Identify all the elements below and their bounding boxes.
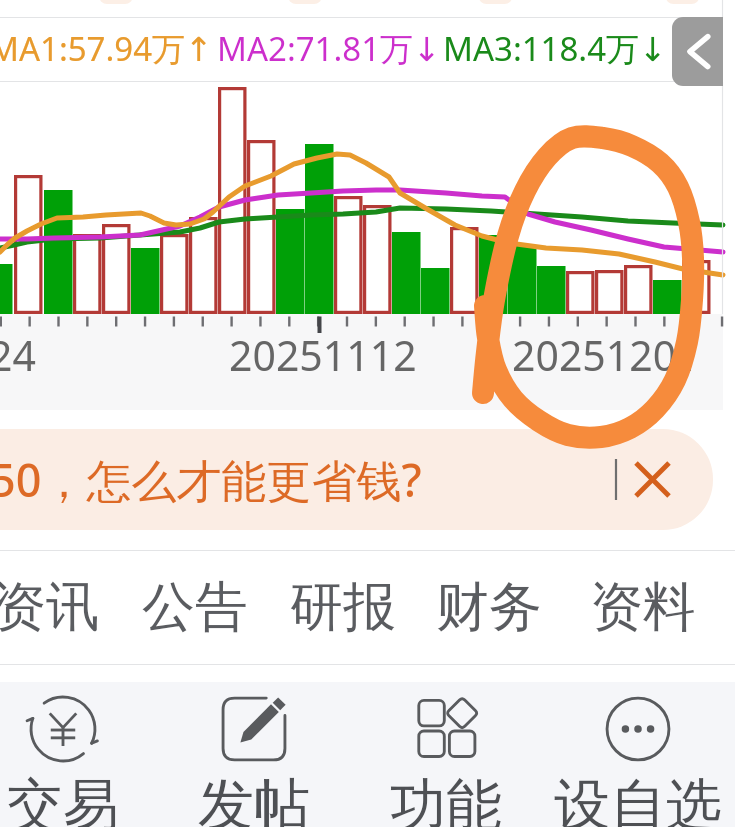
button[interactable]: 交易 xyxy=(0,682,158,827)
staticText: 资讯 xyxy=(0,574,99,641)
button[interactable]: Close xyxy=(634,461,671,498)
button[interactable]: 功能 xyxy=(350,682,541,827)
staticText: 资料 xyxy=(590,574,696,641)
staticText: 50，怎么才能更省钱? xyxy=(0,449,422,510)
staticText: 交易 xyxy=(7,770,119,827)
button[interactable]: 公告 xyxy=(121,551,269,664)
staticText: 20251112 xyxy=(229,327,417,383)
staticText: 20251201 xyxy=(512,327,700,383)
button[interactable]: 发帖 xyxy=(158,682,349,827)
staticText: 24 xyxy=(0,327,36,383)
button[interactable]: 研报 xyxy=(269,551,417,664)
staticText: 功能 xyxy=(390,770,502,827)
staticText: 公告 xyxy=(142,574,248,641)
staticText: 发帖 xyxy=(198,770,310,827)
staticText: 研报 xyxy=(290,574,396,641)
staticText: MA2:71.81万↓ xyxy=(217,26,441,71)
button[interactable]: 财务 xyxy=(415,551,563,664)
button[interactable]: 资料 xyxy=(569,551,717,664)
staticText: 设自选 xyxy=(554,770,722,827)
button[interactable]: 50，怎么才能更省钱? xyxy=(0,429,713,530)
staticText: 财务 xyxy=(436,574,542,641)
staticText: MA3:118.4万↓ xyxy=(443,26,667,71)
button[interactable]: 设自选 xyxy=(542,682,733,827)
button[interactable]: Back xyxy=(672,17,723,86)
staticText: MA1:57.94万↑ xyxy=(0,26,213,71)
button[interactable]: 资讯 xyxy=(0,551,120,664)
